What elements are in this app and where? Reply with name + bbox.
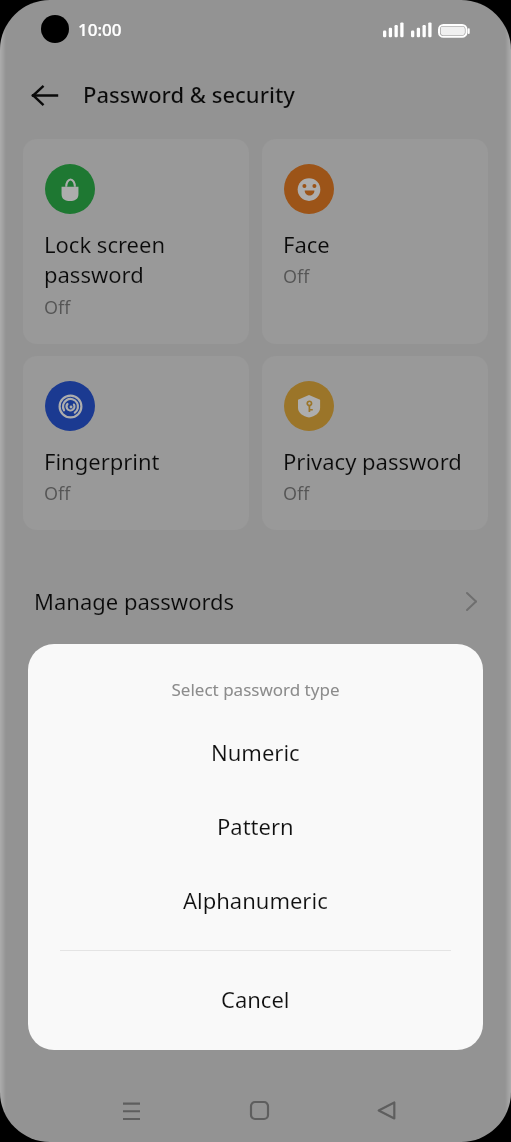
button[interactable]: Back: [23, 73, 67, 117]
staticText: Numeric: [211, 737, 300, 767]
staticText: Manage passwords: [34, 586, 235, 616]
staticText: Off: [283, 264, 310, 289]
button[interactable]: Manage passwords: [0, 566, 511, 646]
button[interactable]: Recent apps: [103, 1082, 159, 1138]
button[interactable]: Pattern: [28, 801, 483, 851]
staticText: Off: [44, 481, 71, 506]
button[interactable]: Back: [358, 1082, 414, 1138]
staticText: Face: [283, 229, 330, 259]
staticText: Lock screen password: [44, 229, 166, 290]
button[interactable]: Cancel: [28, 974, 483, 1024]
staticText: Off: [283, 481, 310, 506]
staticText: Fingerprint: [44, 446, 160, 476]
staticText: 10:00: [78, 18, 122, 41]
button[interactable]: Privacy password: [262, 356, 488, 530]
staticText: Pattern: [217, 811, 294, 841]
staticText: Off: [44, 295, 71, 320]
button[interactable]: Numeric: [28, 727, 483, 777]
button[interactable]: Fingerprint: [23, 356, 249, 530]
staticText: Password & security: [83, 79, 295, 109]
button[interactable]: Home: [231, 1082, 287, 1138]
staticText: Cancel: [221, 984, 290, 1014]
staticText: Alphanumeric: [183, 885, 328, 915]
button[interactable]: Alphanumeric: [28, 875, 483, 925]
staticText: Select password type: [28, 678, 483, 701]
button[interactable]: Face: [262, 139, 488, 344]
button[interactable]: Lock screen password: [23, 139, 249, 344]
staticText: Privacy password: [283, 446, 462, 476]
